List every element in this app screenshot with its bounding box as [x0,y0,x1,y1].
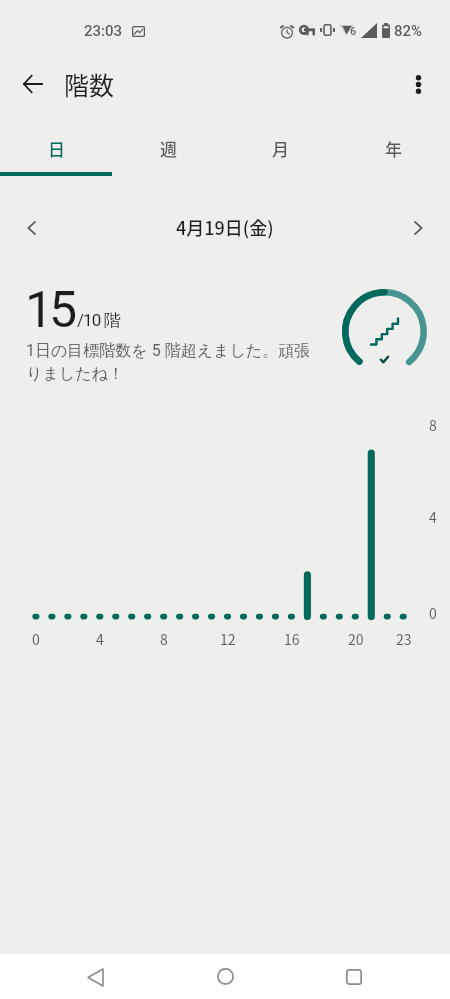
button[interactable]: More options [396,62,440,106]
staticText: 23:03 [84,22,123,40]
staticText: 23 [396,629,412,649]
staticText: 20 [348,629,364,649]
staticText: 4 [96,629,104,649]
staticText: 0 [429,603,437,623]
staticText: 8 [160,629,168,649]
staticText: 年 [385,136,402,161]
staticText: 日 [48,136,65,161]
button[interactable]: Recent apps [330,954,378,999]
button[interactable]: Back [71,955,119,999]
staticText: 4月19日(金) [176,214,274,240]
staticText: 82% [394,22,423,40]
button[interactable]: 週 [112,120,224,172]
staticText: /10 階 [77,310,120,331]
staticText: 16 [284,629,300,649]
button[interactable]: Home [201,954,249,999]
staticText: 12 [220,629,236,649]
staticText: 1日の目標階数を 5 階超えました。頑張りましたね！ [26,341,318,384]
staticText: 15 [25,281,74,340]
button[interactable]: Previous day [12,208,52,248]
staticText: 週 [160,136,177,161]
button[interactable]: 日 [0,120,112,172]
button[interactable]: Back [11,62,55,106]
staticText: 月 [272,136,289,161]
button[interactable]: 年 [337,120,450,172]
staticText: 8 [429,415,437,435]
staticText: 階数 [64,66,115,102]
staticText: 0 [32,629,40,649]
staticText: 6 [350,25,357,38]
button[interactable]: 月 [224,120,337,172]
button[interactable]: Next day [398,208,438,248]
staticText: 4 [429,507,437,527]
